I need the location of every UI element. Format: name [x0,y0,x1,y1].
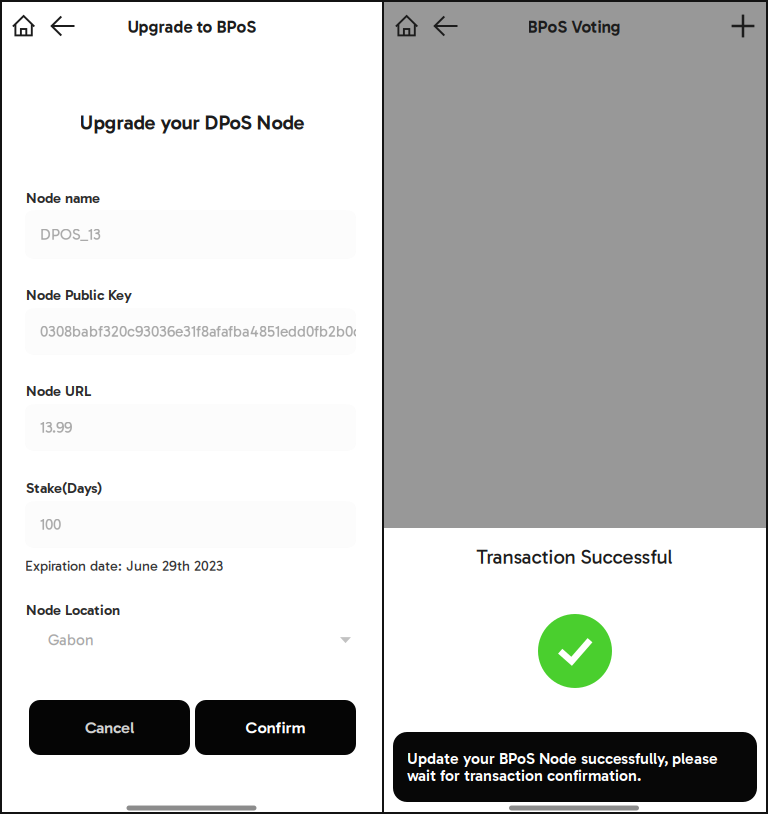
button[interactable]: Home [3,5,43,47]
staticText: DPOS_13 [40,225,101,244]
staticText: 100 [40,515,61,534]
staticText: 0308babf320c93036e31f8afafba4851edd0fb2b… [40,322,361,341]
button[interactable]: Back [426,5,466,47]
button[interactable]: Add [723,5,763,47]
button[interactable]: DPOS_13 [25,210,356,258]
staticText: Stake(Days) [26,479,102,497]
staticText: Node Location [26,601,120,619]
button[interactable]: 13.99 [25,404,356,450]
staticText: Transaction Successful [476,545,672,569]
staticText: 13.99 [40,418,72,437]
staticText: BPoS Voting [527,17,620,37]
button[interactable]: Cancel [29,700,190,755]
staticText: Cancel [85,717,134,737]
button[interactable]: Home [386,5,426,47]
staticText: Confirm [245,717,305,737]
staticText: Node name [26,189,100,207]
staticText: wait for transaction confirmation. [407,766,641,785]
staticText: Upgrade to BPoS [127,17,256,37]
staticText: Gabon [48,631,94,649]
staticText: Node Public Key [26,286,132,304]
staticText: Node URL [26,382,91,400]
staticText: Update your BPoS Node successfully, plea… [407,749,718,768]
button[interactable]: 0308babf320c93036e31f8afafba4851edd0fb2b… [25,308,356,354]
button[interactable]: 100 [25,501,356,547]
staticText: Expiration date: June 29th 2023 [25,557,223,574]
button[interactable]: Back [43,5,83,47]
button[interactable]: Confirm [195,700,356,755]
staticText: Upgrade your DPoS Node [79,110,304,135]
button[interactable]: Gabon [25,623,356,657]
